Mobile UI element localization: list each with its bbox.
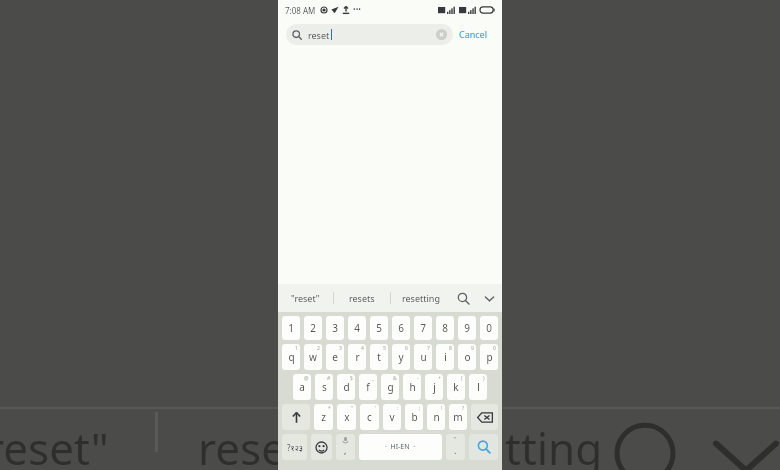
staticText: 2 — [317, 345, 320, 352]
staticText: x — [344, 410, 350, 424]
staticText: 0 — [493, 345, 496, 352]
button[interactable]: 6 — [392, 344, 410, 370]
button[interactable]: Backspace — [471, 404, 498, 430]
staticText: 5 — [376, 321, 382, 335]
button[interactable]: resetting — [391, 284, 450, 312]
button[interactable]: 5 — [370, 316, 388, 340]
button[interactable]: Shift — [282, 404, 310, 430]
button[interactable]: 3 — [326, 316, 344, 340]
staticText: + — [438, 375, 441, 382]
button[interactable]: 0 — [480, 316, 498, 340]
staticText: 4 — [354, 321, 360, 335]
staticText: tting — [505, 418, 603, 470]
button[interactable]: & — [381, 374, 399, 400]
button[interactable]: " — [337, 404, 356, 430]
button[interactable]: 6 — [392, 316, 410, 340]
staticText: 2 — [310, 321, 316, 335]
staticText: & — [393, 375, 397, 382]
button[interactable]: _ — [359, 374, 377, 400]
button[interactable]: Expand suggestions — [476, 284, 502, 312]
staticText: rese — [198, 418, 286, 470]
staticText: reset — [308, 29, 330, 41]
button[interactable]: $ — [337, 374, 355, 400]
staticText: 9 — [464, 321, 470, 335]
staticText: m — [453, 410, 463, 424]
staticText: "reset" — [291, 292, 320, 304]
button[interactable]: Cancel — [453, 25, 494, 43]
staticText: ? — [462, 405, 465, 412]
staticText: 7 — [420, 321, 426, 335]
button[interactable]: 2 — [304, 316, 322, 340]
button[interactable]: @ — [293, 374, 311, 400]
staticText: g — [387, 380, 394, 394]
staticText: t — [377, 350, 381, 364]
staticText: h — [409, 380, 416, 394]
staticText: ?१२३ — [287, 442, 303, 453]
button[interactable]: 7 — [414, 344, 432, 370]
staticText: d — [343, 380, 350, 394]
staticText: e — [332, 350, 338, 364]
button[interactable]: 0 — [480, 344, 498, 370]
button[interactable]: ( — [447, 374, 465, 400]
staticText: 7 — [427, 345, 430, 352]
staticText: 8 — [449, 345, 452, 352]
button[interactable]: 9 — [458, 344, 476, 370]
button[interactable]: "reset" — [278, 284, 333, 312]
button[interactable]: 1 — [282, 344, 300, 370]
button[interactable]: Search — [469, 434, 498, 460]
staticText: # — [327, 375, 331, 382]
staticText: 6 — [398, 321, 404, 335]
button[interactable]: Search — [286, 24, 453, 45]
staticText: resetting — [402, 292, 440, 304]
button[interactable]: 4 — [348, 344, 366, 370]
button[interactable]: : — [383, 404, 401, 430]
button[interactable]: ; — [405, 404, 423, 430]
button[interactable]: 2 — [304, 344, 322, 370]
button[interactable]: 9 — [458, 316, 476, 340]
staticText: ' — [375, 405, 377, 412]
button[interactable]: Clear text — [436, 29, 447, 40]
button[interactable]: ' — [360, 404, 379, 430]
staticText: @ — [304, 375, 309, 382]
button[interactable]: 5 — [370, 344, 388, 370]
button[interactable]: · HI-EN · — [359, 434, 442, 460]
staticText: resets — [349, 292, 375, 304]
staticText: ; — [419, 405, 421, 412]
staticText: ( — [461, 375, 463, 382]
button[interactable]: # — [315, 374, 333, 400]
staticText: s — [322, 380, 327, 394]
button[interactable]: - — [403, 374, 421, 400]
staticText: 7:08 AM — [285, 5, 316, 16]
button[interactable]: 8 — [436, 316, 454, 340]
button[interactable]: 7 — [414, 316, 432, 340]
staticText: o — [464, 350, 471, 364]
button[interactable]: 4 — [348, 316, 366, 340]
button[interactable]: resets — [334, 284, 390, 312]
staticText: Cancel — [459, 28, 488, 40]
staticText: " — [351, 405, 354, 412]
staticText: f — [366, 380, 370, 394]
button[interactable]: * — [314, 404, 333, 430]
button[interactable]: 3 — [326, 344, 344, 370]
staticText: a — [299, 380, 305, 394]
staticText: reset" — [0, 418, 109, 470]
button[interactable]: 1 — [282, 316, 300, 340]
button[interactable]: Period — [446, 434, 465, 460]
staticText: · HI-EN · — [385, 442, 416, 452]
button[interactable]: + — [425, 374, 443, 400]
button[interactable]: 8 — [436, 344, 454, 370]
staticText: y — [398, 350, 404, 364]
staticText: u — [420, 350, 427, 364]
button[interactable]: Emoji — [311, 434, 332, 460]
button[interactable]: ) — [469, 374, 487, 400]
staticText: 6 — [405, 345, 408, 352]
button[interactable]: Voice input — [336, 434, 355, 460]
button[interactable]: ? — [449, 404, 467, 430]
button[interactable]: Search suggestions — [450, 284, 476, 312]
button[interactable]: ! — [427, 404, 445, 430]
staticText: , — [344, 444, 347, 456]
staticText: j — [433, 380, 436, 394]
staticText: c — [367, 410, 372, 424]
staticText: r — [355, 350, 360, 364]
button[interactable]: Symbols — [282, 434, 307, 460]
